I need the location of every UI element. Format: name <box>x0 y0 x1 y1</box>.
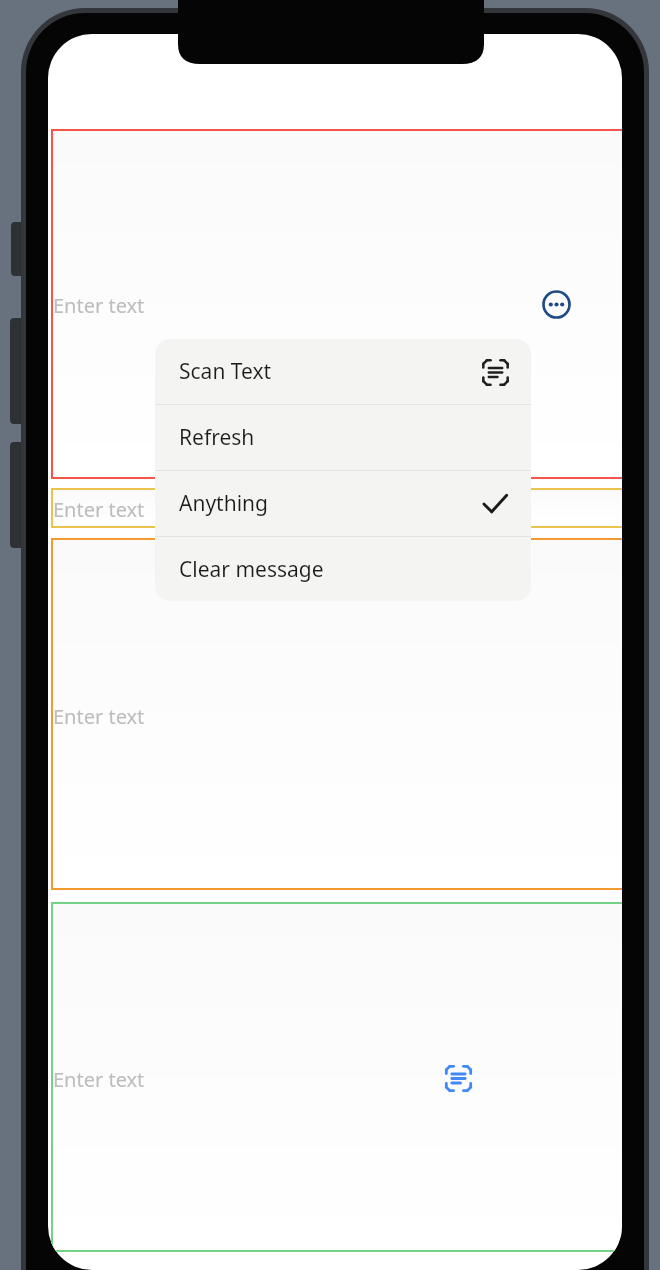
button[interactable]: Refresh <box>155 405 531 470</box>
staticText: Enter text <box>53 703 145 730</box>
staticText: Enter text <box>53 1066 145 1093</box>
staticText: Clear message <box>179 555 324 584</box>
staticText: Refresh <box>179 423 255 452</box>
button[interactable]: Enter text <box>51 488 622 528</box>
button[interactable]: Anything <box>155 471 531 536</box>
button[interactable]: Enter text <box>51 129 622 479</box>
button[interactable]: Enter text <box>51 538 622 890</box>
staticText: Enter text <box>53 292 145 319</box>
button[interactable]: More options <box>536 284 576 324</box>
button[interactable]: Clear message <box>155 537 531 601</box>
staticText: Anything <box>179 489 268 518</box>
button[interactable]: Scan Text <box>155 339 531 404</box>
staticText: Scan Text <box>179 357 272 386</box>
staticText: Enter text <box>53 496 145 523</box>
button[interactable]: Scan text <box>438 1058 478 1098</box>
button[interactable]: Enter text <box>51 902 622 1252</box>
